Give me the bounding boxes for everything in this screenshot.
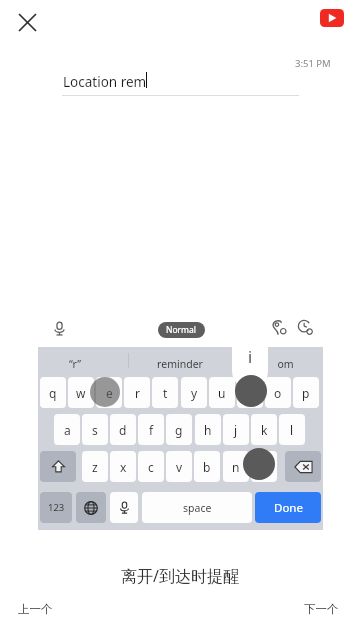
- staticText: j: [234, 422, 238, 438]
- button[interactable]: a: [54, 414, 80, 445]
- staticText: d: [119, 422, 127, 438]
- staticText: b: [203, 459, 211, 475]
- staticText: z: [92, 459, 98, 475]
- button[interactable]: i: [237, 377, 263, 408]
- button[interactable]: 123: [40, 492, 72, 523]
- staticText: 上一个: [18, 602, 53, 616]
- staticText: h: [204, 422, 212, 438]
- button[interactable]: u: [209, 377, 235, 408]
- button[interactable]: Done: [255, 492, 321, 523]
- button[interactable]: h: [195, 414, 221, 445]
- button[interactable]: Backspace: [285, 451, 321, 482]
- button[interactable]: Normal: [158, 322, 205, 338]
- button[interactable]: Close: [10, 5, 44, 39]
- staticText: s: [92, 422, 98, 438]
- staticText: 123: [48, 501, 65, 514]
- button[interactable]: 上一个: [14, 598, 57, 620]
- staticText: y: [191, 385, 198, 401]
- button[interactable]: d: [110, 414, 136, 445]
- staticText: a: [64, 422, 71, 438]
- staticText: om: [277, 357, 294, 371]
- button[interactable]: k: [251, 414, 277, 445]
- staticText: 下一个: [304, 602, 339, 616]
- staticText: l: [290, 422, 294, 438]
- staticText: t: [163, 385, 168, 401]
- button[interactable]: Shift: [40, 451, 76, 482]
- staticText: “r”: [69, 357, 81, 371]
- staticText: Location rem: [63, 73, 147, 91]
- button[interactable]: l: [279, 414, 305, 445]
- button[interactable]: r: [124, 377, 150, 408]
- staticText: p: [302, 385, 310, 401]
- button[interactable]: x: [110, 451, 136, 482]
- staticText: f: [149, 422, 154, 438]
- button[interactable]: f: [138, 414, 164, 445]
- button[interactable]: w: [68, 377, 94, 408]
- staticText: reminder: [157, 357, 203, 371]
- staticText: space: [183, 501, 212, 515]
- staticText: e: [106, 385, 113, 401]
- staticText: x: [120, 459, 127, 475]
- staticText: v: [176, 459, 183, 475]
- button[interactable]: b: [194, 451, 220, 482]
- staticText: Normal: [166, 324, 197, 336]
- button[interactable]: q: [40, 377, 66, 408]
- button[interactable]: Voice typing: [110, 492, 138, 523]
- button[interactable]: Voice input: [47, 316, 71, 340]
- button[interactable]: YouTube: [318, 8, 346, 28]
- button[interactable]: 下一个: [300, 598, 343, 620]
- staticText: n: [232, 459, 240, 475]
- button[interactable]: j: [223, 414, 249, 445]
- button[interactable]: c: [138, 451, 164, 482]
- staticText: Done: [274, 500, 303, 516]
- button[interactable]: o: [265, 377, 291, 408]
- button[interactable]: Time reminder: [294, 316, 316, 338]
- staticText: o: [274, 385, 282, 401]
- staticText: g: [175, 422, 183, 438]
- button[interactable]: p: [293, 377, 319, 408]
- staticText: 离开/到达时提醒: [121, 565, 239, 587]
- button[interactable]: y: [181, 377, 207, 408]
- button[interactable]: t: [152, 377, 178, 408]
- button[interactable]: e: [96, 377, 122, 408]
- button[interactable]: n: [223, 451, 249, 482]
- staticText: i: [248, 346, 253, 368]
- staticText: k: [261, 422, 268, 438]
- staticText: c: [148, 459, 154, 475]
- staticText: r: [135, 385, 140, 401]
- button[interactable]: Location reminder: [268, 316, 290, 338]
- staticText: w: [76, 385, 86, 401]
- staticText: 3:51 PM: [295, 57, 331, 70]
- staticText: u: [218, 385, 226, 401]
- button[interactable]: z: [82, 451, 108, 482]
- button[interactable]: Change language: [76, 492, 106, 523]
- button[interactable]: v: [166, 451, 192, 482]
- button[interactable]: s: [82, 414, 108, 445]
- button[interactable]: m: [251, 451, 277, 482]
- button[interactable]: g: [166, 414, 192, 445]
- staticText: q: [49, 385, 57, 401]
- button[interactable]: space: [142, 492, 252, 523]
